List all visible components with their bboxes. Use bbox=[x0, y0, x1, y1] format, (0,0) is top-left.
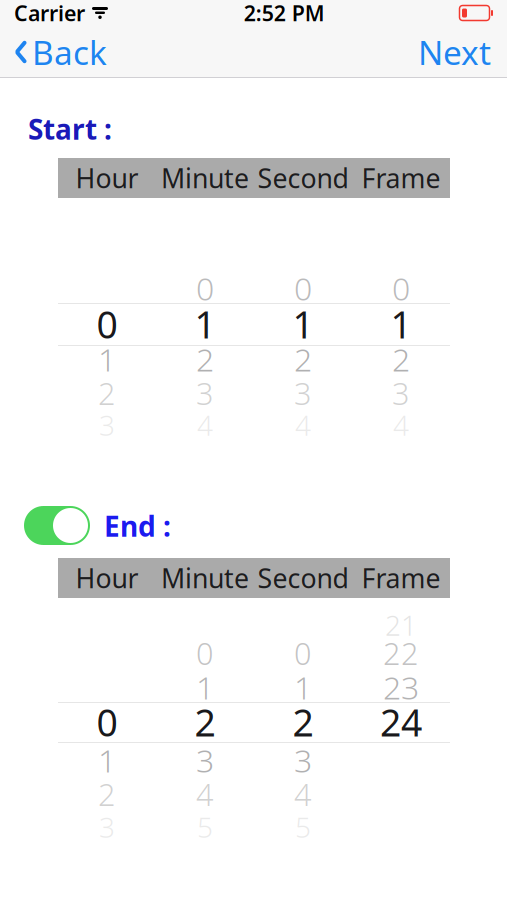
staticText: Start : bbox=[28, 110, 112, 148]
button[interactable]: Back bbox=[0, 26, 119, 78]
staticText: 1 bbox=[294, 666, 312, 708]
staticText: Frame bbox=[361, 160, 440, 196]
staticText: 4 bbox=[393, 406, 409, 444]
staticText: 3 bbox=[392, 373, 410, 413]
staticText: 23 bbox=[383, 666, 419, 708]
staticText: 2 bbox=[294, 338, 312, 380]
staticText: 1 bbox=[194, 299, 215, 349]
staticText: Hour bbox=[75, 560, 138, 596]
staticText: Second bbox=[257, 160, 348, 196]
staticText: 22 bbox=[383, 633, 419, 673]
staticText: 2 bbox=[98, 373, 116, 413]
staticText: Frame bbox=[361, 560, 440, 596]
staticText: 2 bbox=[392, 338, 410, 380]
staticText: Second bbox=[257, 560, 348, 596]
button[interactable]: Next bbox=[402, 26, 507, 78]
staticText: 2 bbox=[196, 338, 214, 380]
staticText: 4 bbox=[295, 406, 311, 444]
staticText: 0 bbox=[196, 633, 214, 673]
staticText: 21 bbox=[385, 606, 417, 644]
staticText: 2 bbox=[292, 697, 313, 747]
staticText: 2:52 PM bbox=[244, 0, 325, 27]
staticText: 1 bbox=[292, 299, 313, 349]
staticText: 0 bbox=[96, 697, 117, 747]
staticText: 5 bbox=[197, 808, 213, 846]
staticText: 0 bbox=[294, 633, 312, 673]
staticText: 0 bbox=[392, 267, 410, 309]
staticText: 4 bbox=[294, 774, 312, 814]
staticText: 0 bbox=[96, 299, 117, 349]
staticText: 3 bbox=[294, 373, 312, 413]
staticText: Minute bbox=[161, 160, 249, 196]
staticText: 24 bbox=[380, 697, 422, 747]
staticText: Back bbox=[32, 30, 107, 74]
staticText: 5 bbox=[295, 808, 311, 846]
staticText: 2 bbox=[98, 774, 116, 814]
staticText: Next bbox=[418, 30, 491, 74]
staticText: 1 bbox=[98, 739, 116, 781]
staticText: Hour bbox=[75, 160, 138, 196]
staticText: 3 bbox=[294, 739, 312, 781]
staticText: 0 bbox=[294, 267, 312, 309]
staticText: 2 bbox=[194, 697, 215, 747]
staticText: Minute bbox=[161, 560, 249, 596]
button[interactable]: Enable end timecode bbox=[24, 506, 90, 545]
staticText: 3 bbox=[99, 808, 115, 846]
staticText: 3 bbox=[99, 406, 115, 444]
staticText: 0 bbox=[196, 267, 214, 309]
staticText: End : bbox=[104, 507, 171, 545]
staticText: 3 bbox=[196, 739, 214, 781]
staticText: 1 bbox=[98, 338, 116, 380]
staticText: 1 bbox=[196, 666, 214, 708]
staticText: Carrier bbox=[14, 0, 85, 27]
staticText: 4 bbox=[197, 406, 213, 444]
staticText: 3 bbox=[196, 373, 214, 413]
staticText: 4 bbox=[196, 774, 214, 814]
staticText: 1 bbox=[390, 299, 411, 349]
